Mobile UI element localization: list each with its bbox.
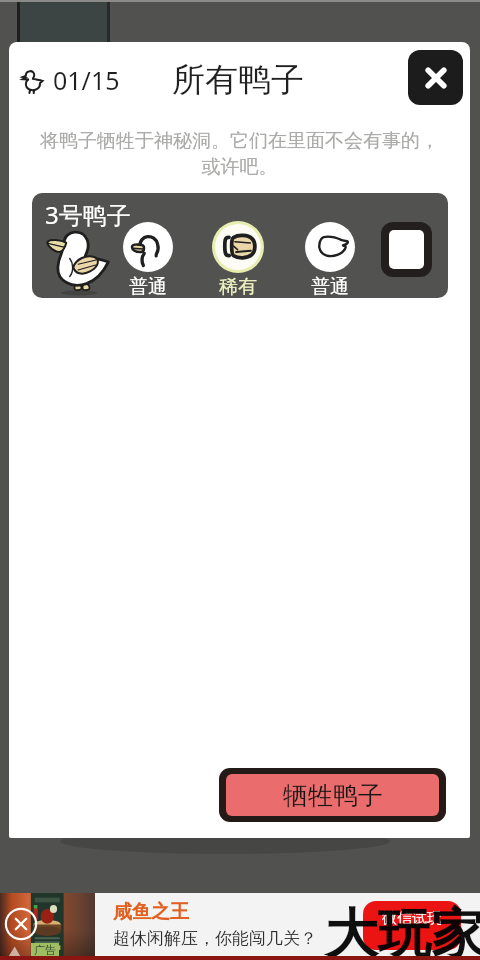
button[interactable]: 牺牲鸭子 [226, 774, 439, 816]
staticText: 01/15 [53, 63, 120, 97]
staticText: 将鸭子牺牲于神秘洞。它们在里面不会有事的， 或许吧。 [9, 129, 470, 179]
staticText: 所有鸭子 [172, 59, 304, 101]
button[interactable]: Close ad [3, 906, 39, 942]
button[interactable]: 微信试玩 [363, 901, 461, 950]
button[interactable]: 01/15 [19, 63, 120, 97]
staticText: 牺牲鸭子 [283, 780, 383, 811]
staticText: 普通 [311, 275, 349, 298]
staticText: 3号鸭子 [45, 198, 131, 231]
staticText: 广告 [34, 943, 56, 957]
button[interactable]: 3号鸭子 [32, 193, 448, 298]
button[interactable]: Close [408, 50, 463, 105]
staticText: 稀有 [219, 275, 257, 298]
staticText: 微信试玩 [382, 909, 442, 928]
button[interactable]: Empty slot [389, 230, 424, 269]
staticText: 超休闲解压，你能闯几关？ [113, 928, 317, 949]
staticText: 普通 [129, 275, 167, 298]
staticText: 咸鱼之王 [113, 900, 189, 924]
staticText: 大玩家 [325, 901, 480, 960]
